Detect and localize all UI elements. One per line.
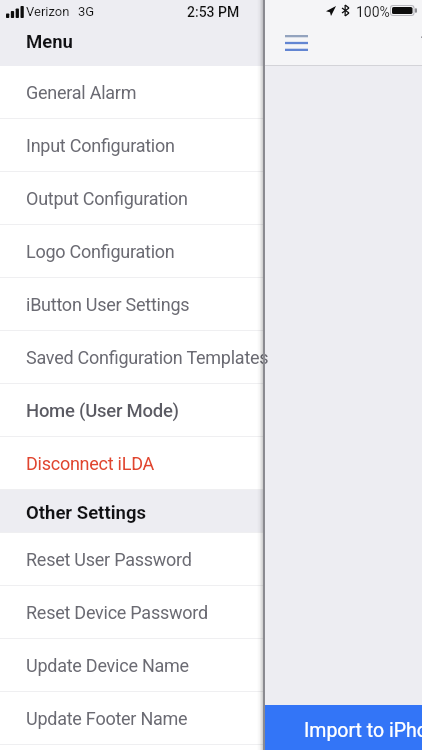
staticText: Logo Configuration (26, 241, 175, 262)
button[interactable]: Home (User Mode) (0, 384, 263, 437)
staticText: iButton User Settings (26, 294, 190, 315)
button[interactable]: Update Device Name (0, 639, 263, 692)
button[interactable]: Update Footer Name (0, 692, 263, 745)
staticText: Reset Device Password (26, 602, 208, 623)
staticText: Output Configuration (26, 188, 188, 209)
button[interactable]: Import to iPhone (0, 705, 422, 750)
staticText: 100% (356, 4, 390, 20)
button[interactable]: Saved Configuration Templates (0, 331, 263, 384)
staticText: Saved Configuration Templates (26, 347, 269, 368)
button[interactable]: Reset Device Password (0, 586, 263, 639)
button[interactable]: Input Configuration (0, 119, 263, 172)
button[interactable]: Disconnect iLDA (0, 437, 263, 490)
button[interactable]: Logo Configuration (0, 225, 263, 278)
staticText: Other Settings (26, 502, 146, 524)
staticText: 2:53 PM (187, 4, 240, 20)
button[interactable]: More (420, 36, 422, 50)
button[interactable]: General Alarm (0, 66, 263, 119)
staticText: Import to iPhone (304, 719, 422, 742)
button[interactable]: Reset User Password (0, 533, 263, 586)
staticText: General Alarm (26, 82, 137, 103)
staticText: 3G (78, 4, 95, 19)
button[interactable]: iButton User Settings (0, 278, 263, 331)
staticText: Menu (26, 31, 73, 53)
staticText: Input Configuration (26, 135, 175, 156)
staticText: Update Device Name (26, 655, 189, 676)
staticText: Reset User Password (26, 549, 192, 570)
staticText: Disconnect iLDA (26, 453, 155, 474)
button[interactable]: Output Configuration (0, 172, 263, 225)
staticText: Update Footer Name (26, 708, 188, 729)
button[interactable]: Menu (274, 25, 318, 55)
staticText: Verizon (26, 4, 70, 19)
staticText: Home (User Mode) (26, 400, 179, 422)
